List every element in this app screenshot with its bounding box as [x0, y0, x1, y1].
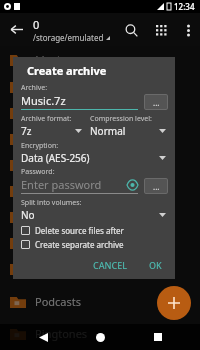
- staticText: 0: [33, 17, 40, 32]
- button[interactable]: [0, 177, 200, 203]
- staticText: Encryption:: [21, 141, 59, 151]
- staticText: Archive format:: [21, 114, 72, 124]
- button[interactable]: Grid view: [146, 15, 176, 45]
- button[interactable]: Data (AES-256): [21, 151, 168, 165]
- button[interactable]: [0, 99, 200, 125]
- staticText: Data (AES-256): [21, 151, 159, 165]
- staticText: Delete source files after compression: [35, 225, 168, 236]
- button[interactable]: 7z: [21, 124, 84, 138]
- staticText: Enter password: [21, 177, 126, 192]
- button[interactable]: Browse: [144, 94, 168, 110]
- button[interactable]: Home: [85, 324, 115, 350]
- button[interactable]: [0, 203, 200, 229]
- button[interactable]: [0, 125, 200, 151]
- button[interactable]: Ringtones: [0, 320, 200, 346]
- staticText: Create archive: [27, 63, 107, 78]
- button[interactable]: Music: [0, 46, 200, 72]
- button[interactable]: Delete source files after compression: [21, 225, 168, 236]
- staticText: 12:34: [174, 1, 195, 12]
- button[interactable]: Normal: [90, 124, 168, 138]
- button[interactable]: More options: [176, 18, 200, 42]
- button[interactable]: [0, 73, 200, 99]
- button[interactable]: Back: [0, 13, 33, 46]
- button[interactable]: CANCEL: [88, 256, 133, 274]
- staticText: 7z: [21, 124, 75, 138]
- staticText: CANCEL: [93, 259, 128, 271]
- button[interactable]: Add: [157, 286, 191, 320]
- staticText: OK: [149, 259, 162, 271]
- staticText: Podcasts: [35, 294, 82, 309]
- button[interactable]: No: [21, 208, 168, 222]
- staticText: Archive:: [21, 83, 48, 93]
- staticText: Ringtones: [35, 326, 88, 341]
- staticText: Split into volumes:: [21, 198, 82, 208]
- button[interactable]: Back: [28, 324, 58, 350]
- button[interactable]: [0, 229, 200, 255]
- button[interactable]: [0, 255, 200, 281]
- staticText: /storage/emulated: [33, 32, 104, 43]
- button[interactable]: Create separate archive: [21, 239, 168, 250]
- button[interactable]: Search: [116, 15, 146, 45]
- staticText: ...: [153, 97, 160, 108]
- staticText: No: [21, 208, 159, 222]
- button[interactable]: Show password: [126, 179, 138, 191]
- staticText: Compression level:: [90, 114, 152, 124]
- button[interactable]: Podcasts: [0, 288, 200, 314]
- staticText: Music.7z: [21, 93, 66, 108]
- button[interactable]: [0, 151, 200, 177]
- button[interactable]: Recents: [143, 324, 173, 350]
- button[interactable]: Browse: [144, 178, 168, 194]
- staticText: ...: [153, 181, 160, 192]
- staticText: Create separate archive: [35, 239, 124, 250]
- staticText: Password:: [21, 167, 55, 177]
- staticText: Music: [35, 52, 66, 67]
- staticText: Normal: [90, 124, 159, 138]
- button[interactable]: OK: [143, 256, 168, 274]
